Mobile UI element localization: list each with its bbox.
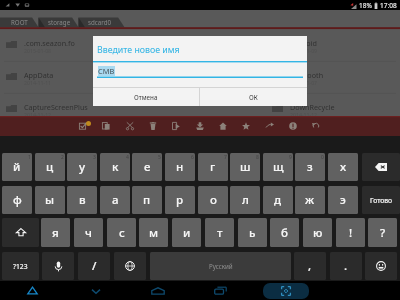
- button[interactable]: в: [67, 186, 97, 214]
- button[interactable]: о: [198, 186, 228, 214]
- button[interactable]: ?: [368, 218, 397, 247]
- button[interactable]: ф: [2, 186, 32, 214]
- button[interactable]: Recent apps: [207, 281, 233, 300]
- button[interactable]: ?123: [2, 252, 39, 280]
- staticText: !: [349, 225, 353, 241]
- button[interactable]: .: [330, 252, 362, 280]
- button[interactable]: т: [205, 218, 234, 247]
- staticText: 6: [191, 154, 194, 161]
- staticText: Android: [290, 38, 317, 48]
- button[interactable]: ,: [294, 252, 326, 280]
- staticText: CaptureScreenPlus: [24, 102, 88, 112]
- button[interactable]: Archive: [189, 116, 211, 136]
- button[interactable]: щ: [263, 153, 293, 181]
- button[interactable]: я: [41, 218, 70, 247]
- staticText: с: [119, 225, 125, 241]
- button[interactable]: Select all: [72, 116, 94, 136]
- button[interactable]: х: [328, 153, 358, 181]
- button[interactable]: Undo: [305, 116, 327, 136]
- button[interactable]: Send: [259, 116, 281, 136]
- button[interactable]: Delete: [142, 116, 164, 136]
- button[interactable]: з: [295, 153, 325, 181]
- button[interactable]: Hide keyboard: [83, 281, 109, 300]
- button[interactable]: EMOJI: [365, 252, 397, 280]
- button[interactable]: Отмена: [93, 87, 199, 106]
- button[interactable]: б: [270, 218, 299, 247]
- staticText: б: [281, 225, 288, 241]
- button[interactable]: sdcard0: [81, 17, 117, 27]
- button[interactable]: л: [230, 186, 260, 214]
- staticText: й: [13, 159, 21, 175]
- button[interactable]: ч: [74, 218, 103, 247]
- button[interactable]: Готово: [362, 186, 400, 214]
- staticText: 2014-11-12: [290, 111, 318, 118]
- button[interactable]: bluetooth: [268, 66, 400, 97]
- button[interactable]: Home: [145, 281, 171, 300]
- staticText: Введите новое имя: [97, 44, 180, 56]
- button[interactable]: CaptureScreenPlus: [2, 98, 202, 129]
- button[interactable]: е: [132, 153, 162, 181]
- button[interactable]: MIC: [42, 252, 74, 280]
- button[interactable]: ш: [230, 153, 260, 181]
- button[interactable]: г: [198, 153, 228, 181]
- button[interactable]: д: [263, 186, 293, 214]
- staticText: .com.seazon.fo: [24, 38, 75, 48]
- button[interactable]: Toggle full screen: [263, 283, 309, 299]
- staticText: з: [307, 159, 313, 175]
- staticText: 18%: [359, 1, 372, 10]
- button[interactable]: й: [2, 153, 32, 181]
- staticText: Отмена: [134, 93, 158, 101]
- button[interactable]: Home: [212, 116, 234, 136]
- staticText: storage: [48, 18, 71, 26]
- button[interactable]: GLOBE: [114, 252, 146, 280]
- button[interactable]: .com.seazon.fo: [2, 34, 202, 65]
- button[interactable]: н: [165, 153, 195, 181]
- button[interactable]: ы: [35, 186, 65, 214]
- button[interactable]: ж: [295, 186, 325, 214]
- button[interactable]: а: [100, 186, 130, 214]
- staticText: ш: [240, 159, 251, 175]
- button[interactable]: м: [139, 218, 168, 247]
- staticText: ь: [249, 225, 256, 241]
- button[interactable]: AppData: [2, 66, 202, 97]
- button[interactable]: ⇧: [2, 218, 39, 247]
- button[interactable]: Android: [268, 34, 400, 65]
- button[interactable]: э: [328, 186, 358, 214]
- button[interactable]: и: [172, 218, 201, 247]
- button[interactable]: Bookmark: [235, 116, 257, 136]
- button[interactable]: Back: [19, 281, 45, 300]
- staticText: 9: [289, 154, 292, 161]
- button[interactable]: к: [100, 153, 130, 181]
- button[interactable]: DownRecycle: [268, 98, 400, 129]
- button[interactable]: Русский: [150, 252, 291, 280]
- staticText: 0: [321, 154, 324, 161]
- button[interactable]: ОК: [200, 87, 307, 106]
- button[interactable]: р: [165, 186, 195, 214]
- button[interactable]: Cut: [119, 116, 141, 136]
- button[interactable]: с: [107, 218, 136, 247]
- button[interactable]: /: [78, 252, 110, 280]
- button[interactable]: ь: [238, 218, 267, 247]
- button[interactable]: Properties: [282, 116, 304, 136]
- button[interactable]: п: [132, 186, 162, 214]
- staticText: ф: [13, 192, 22, 208]
- button[interactable]: storage: [41, 17, 78, 27]
- button[interactable]: ц: [35, 153, 65, 181]
- staticText: 2014-11-09: [290, 47, 318, 54]
- staticText: bluetooth: [290, 70, 324, 80]
- staticText: ?: [380, 225, 386, 241]
- staticText: sdcard0: [88, 18, 111, 26]
- button[interactable]: Move: [165, 116, 187, 136]
- button[interactable]: ⌫: [362, 153, 400, 181]
- button[interactable]: у: [67, 153, 97, 181]
- staticText: ОК: [249, 93, 258, 101]
- button[interactable]: ю: [303, 218, 332, 247]
- button[interactable]: Copy: [95, 116, 117, 136]
- staticText: 3: [93, 154, 96, 161]
- staticText: а: [112, 192, 119, 208]
- button[interactable]: !: [336, 218, 365, 247]
- staticText: 17:08: [380, 1, 397, 10]
- button[interactable]: ROOT: [2, 17, 36, 27]
- staticText: 2015-01-07: [290, 79, 318, 86]
